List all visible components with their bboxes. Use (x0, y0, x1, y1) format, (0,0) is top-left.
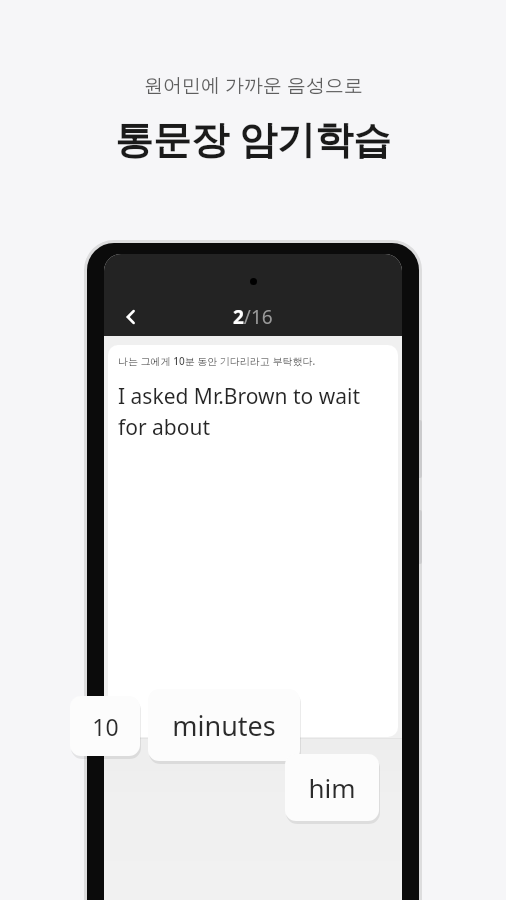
button[interactable]: 10 (70, 696, 140, 756)
staticText: minutes (172, 707, 276, 744)
staticText: 원어민에 가까운 음성으로 (144, 72, 363, 98)
button[interactable]: 나는 그에게 10분 동안 기다리라고 부탁했다. (108, 345, 398, 737)
staticText: 10 (92, 711, 119, 742)
button[interactable]: minutes (148, 689, 300, 761)
button[interactable]: him (285, 754, 379, 821)
button[interactable]: Back (112, 298, 150, 336)
staticText: him (308, 770, 356, 805)
staticText: 나는 그에게 10분 동안 기다리라고 부탁했다. (118, 354, 316, 368)
staticText: 2/16 (233, 304, 273, 330)
staticText: I asked Mr.Brown to wait for about (118, 382, 390, 441)
staticText: 통문장 암기학습 (115, 112, 391, 164)
